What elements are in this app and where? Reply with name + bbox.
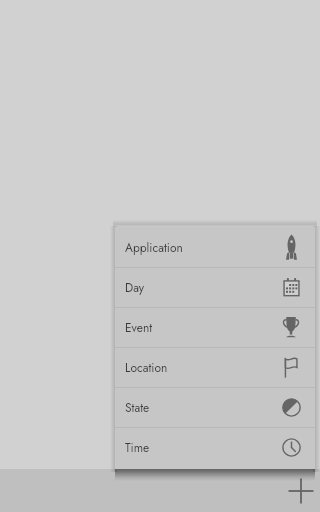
staticText: Day [125, 279, 145, 296]
staticText: State [125, 399, 150, 416]
button[interactable]: Day [115, 267, 315, 307]
button[interactable]: Application [115, 227, 315, 267]
button[interactable]: Location [115, 347, 315, 387]
button[interactable]: Add [281, 471, 320, 511]
staticText: Event [125, 319, 153, 336]
staticText: Application [125, 239, 183, 256]
button[interactable]: Time [115, 427, 315, 467]
button[interactable]: State [115, 387, 315, 427]
staticText: Location [125, 359, 168, 376]
staticText: Time [125, 439, 150, 456]
button[interactable]: Event [115, 307, 315, 347]
